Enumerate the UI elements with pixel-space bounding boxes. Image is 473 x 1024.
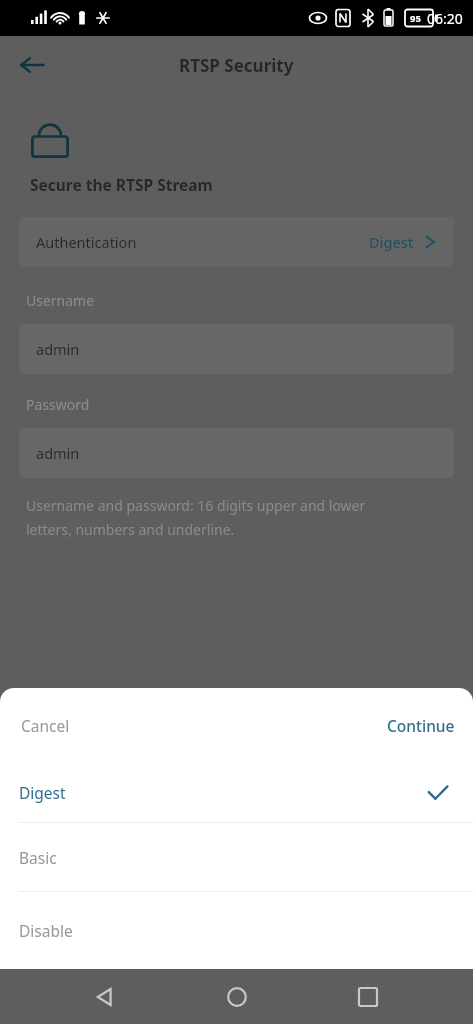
staticText: admin (36, 339, 80, 359)
button[interactable]: admin (19, 428, 454, 478)
staticText: letters, numbers and underline. (26, 520, 235, 539)
button[interactable]: admin (19, 324, 454, 374)
staticText: RTSP Security (179, 54, 294, 77)
button[interactable]: Home (210, 970, 264, 1024)
button[interactable]: Back (10, 43, 54, 87)
staticText: Cancel (21, 715, 70, 736)
staticText: 06:20 (427, 9, 463, 28)
staticText: Disable (19, 920, 73, 941)
staticText: Username and password: 16 digits upper a… (26, 496, 366, 515)
button[interactable]: Digest (0, 763, 473, 822)
staticText: Basic (19, 847, 57, 868)
button[interactable]: Cancel (8, 705, 83, 746)
button[interactable]: Back (78, 970, 132, 1024)
staticText: Continue (387, 715, 455, 736)
button[interactable]: Disable (0, 892, 473, 969)
staticText: Secure the RTSP Stream (30, 174, 213, 195)
staticText: Digest (19, 782, 66, 803)
staticText: Authentication (36, 232, 137, 252)
button[interactable]: Continue (374, 705, 468, 746)
staticText: 95 (410, 12, 421, 25)
button[interactable]: Recents (341, 970, 395, 1024)
button[interactable]: Authentication (19, 217, 454, 267)
staticText: Digest (369, 232, 414, 252)
staticText: Password (26, 395, 90, 414)
staticText: Username (26, 291, 95, 310)
staticText: admin (36, 443, 80, 463)
button[interactable]: Basic (0, 823, 473, 891)
